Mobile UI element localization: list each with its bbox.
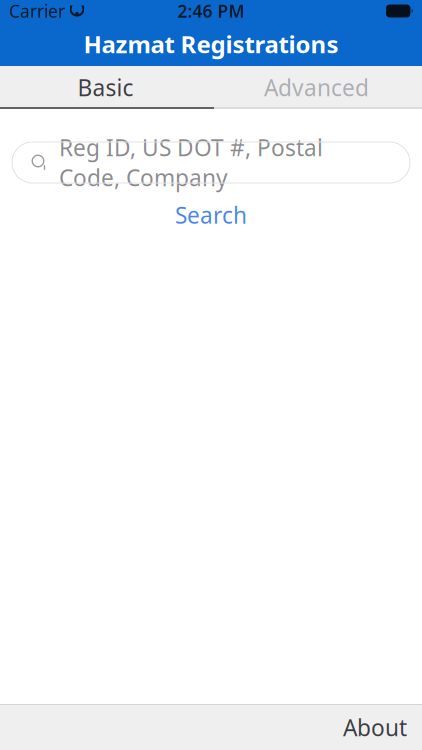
staticText: Basic	[77, 72, 133, 102]
staticText: Advanced	[264, 72, 369, 102]
button[interactable]: Basic	[0, 67, 211, 108]
staticText: Reg ID, US DOT #, Postal Code, Company	[59, 132, 323, 193]
staticText: Carrier	[9, 0, 65, 22]
staticText: Search	[175, 200, 247, 230]
button[interactable]: Search	[111, 200, 311, 230]
staticText: Hazmat Registrations	[83, 28, 338, 60]
staticText: 2:46 PM	[177, 0, 244, 22]
button[interactable]: Reg ID, US DOT #, Postal Code, Company	[12, 142, 410, 183]
button[interactable]: Advanced	[211, 67, 422, 108]
button[interactable]: About	[331, 704, 419, 750]
staticText: About	[343, 712, 407, 742]
